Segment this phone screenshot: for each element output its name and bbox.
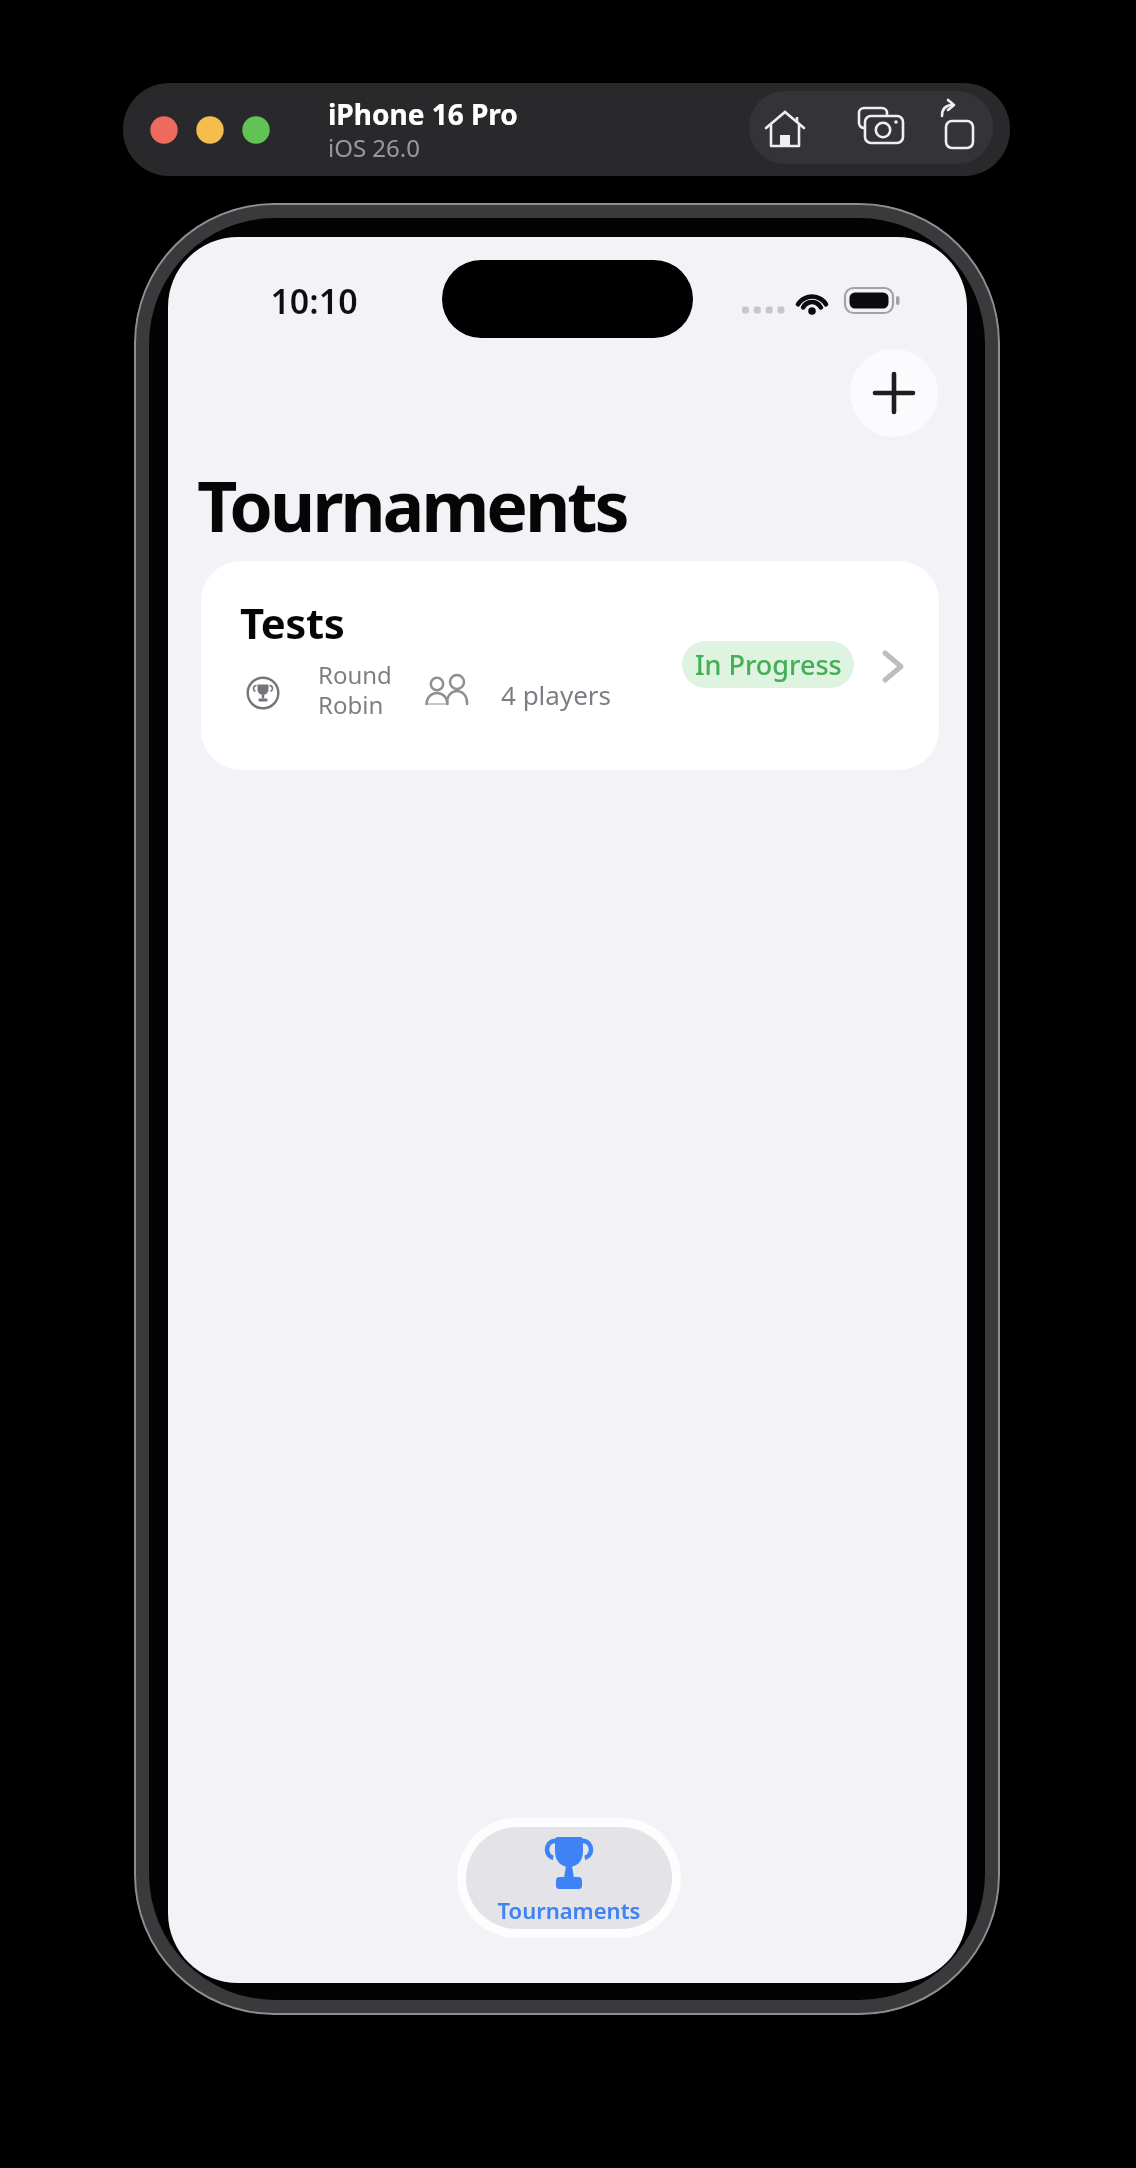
button[interactable] [850,349,938,437]
staticText: iPhone 16 Pro [328,95,518,133]
staticText: 10:10 [254,278,374,324]
button[interactable]: Tests [201,561,939,770]
staticText: Round Robin [318,658,392,721]
staticText: In Progress [695,646,842,683]
button[interactable] [749,91,993,164]
staticText: Tournaments [197,457,627,552]
staticText: 4 players [501,677,612,712]
staticText: Tournaments [457,1895,681,1925]
staticText: Tests [240,594,345,651]
staticText: iOS 26.0 [328,131,420,164]
button[interactable]: Tournaments [457,1818,681,1938]
